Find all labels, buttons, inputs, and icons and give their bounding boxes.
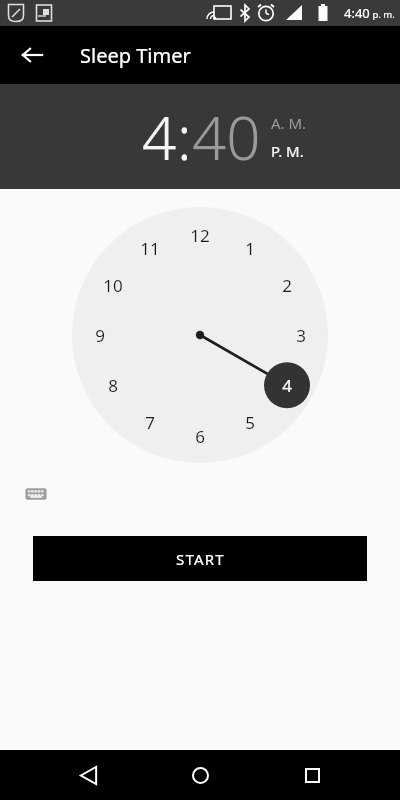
staticText: START [176, 549, 225, 569]
button[interactable]: A. M. [271, 113, 307, 133]
button[interactable]: 1 [230, 228, 270, 268]
staticText: 9 [95, 324, 105, 347]
staticText: 8 [108, 374, 118, 397]
staticText: p. m. [370, 8, 395, 21]
button[interactable]: 6 [180, 416, 220, 456]
button[interactable]: 2 [267, 265, 307, 305]
staticText: : [177, 96, 192, 178]
button[interactable]: 40 [192, 96, 261, 178]
button[interactable]: 4 [267, 365, 307, 405]
button[interactable]: 9 [80, 315, 120, 355]
staticText: 3 [296, 324, 306, 347]
staticText: Sleep Timer [80, 42, 191, 69]
button[interactable]: P. M. [271, 141, 304, 161]
staticText: 4 [282, 374, 292, 397]
staticText: 11 [140, 237, 160, 260]
button[interactable]: 11 [130, 228, 170, 268]
button[interactable]: Back [64, 751, 112, 799]
button[interactable]: 5 [230, 402, 270, 442]
staticText: 12 [190, 224, 210, 247]
button[interactable]: 4 [142, 96, 177, 178]
button[interactable]: 10 [93, 265, 133, 305]
staticText: 4:40 [344, 4, 370, 22]
staticText: 7 [145, 411, 155, 434]
staticText: 5 [245, 411, 255, 434]
button[interactable] [72, 207, 328, 463]
button[interactable]: Recent apps [288, 751, 336, 799]
button[interactable]: 3 [281, 315, 321, 355]
button[interactable]: 7 [130, 402, 170, 442]
button[interactable]: 12 [180, 215, 220, 255]
button[interactable]: Switch to text input [18, 476, 54, 512]
staticText: 2 [282, 274, 292, 297]
staticText: 10 [103, 274, 123, 297]
staticText: 6 [195, 425, 205, 448]
button[interactable]: 8 [93, 365, 133, 405]
button[interactable]: Home [176, 751, 224, 799]
button[interactable]: START [33, 536, 367, 581]
button[interactable]: Back [10, 33, 54, 77]
staticText: 1 [245, 237, 255, 260]
